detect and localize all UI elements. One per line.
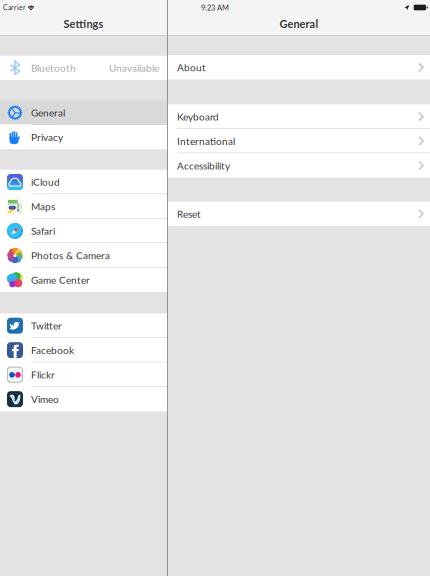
staticText: iCloud: [31, 176, 60, 188]
staticText: Carrier: [3, 3, 26, 12]
staticText: Safari: [31, 225, 55, 237]
staticText: About: [177, 61, 206, 73]
button[interactable]: Reset: [168, 202, 430, 226]
staticText: Bluetooth: [31, 62, 76, 74]
button[interactable]: About: [168, 55, 430, 80]
button[interactable]: Facebook: [0, 338, 167, 362]
staticText: Game Center: [31, 274, 90, 286]
staticText: 9:23 AM: [201, 3, 229, 12]
button[interactable]: Accessibility: [168, 153, 430, 178]
button[interactable]: iCloud: [0, 170, 167, 194]
staticText: General: [279, 17, 318, 30]
staticText: Facebook: [31, 344, 74, 356]
staticText: International: [177, 135, 235, 147]
staticText: Photos & Camera: [31, 249, 110, 261]
button[interactable]: Photos & Camera: [0, 243, 167, 268]
button[interactable]: Game Center: [0, 268, 167, 292]
button[interactable]: Keyboard: [168, 104, 430, 129]
staticText: Maps: [31, 200, 55, 212]
button[interactable]: General: [0, 100, 167, 125]
button[interactable]: Maps: [0, 194, 167, 219]
staticText: Settings: [63, 17, 103, 30]
button[interactable]: Twitter: [0, 313, 167, 338]
staticText: Unavailable: [109, 62, 159, 74]
staticText: Flickr: [31, 369, 55, 381]
staticText: Keyboard: [177, 110, 219, 122]
button[interactable]: Vimeo: [0, 387, 167, 411]
button[interactable]: Privacy: [0, 125, 167, 149]
button[interactable]: Flickr: [0, 362, 167, 387]
button[interactable]: International: [168, 129, 430, 153]
staticText: Reset: [177, 208, 201, 220]
button[interactable]: Bluetooth: [0, 56, 167, 80]
staticText: Accessibility: [177, 160, 230, 172]
staticText: Privacy: [31, 131, 63, 143]
staticText: Twitter: [31, 320, 62, 332]
staticText: Vimeo: [31, 393, 59, 405]
button[interactable]: Safari: [0, 219, 167, 243]
staticText: General: [31, 107, 65, 119]
